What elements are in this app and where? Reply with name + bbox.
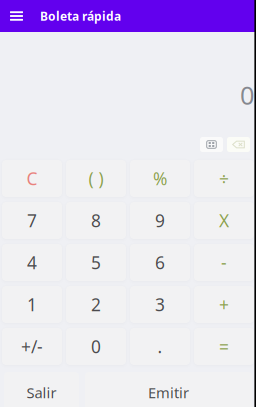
staticText: 1 bbox=[27, 293, 37, 316]
button[interactable]: 2 bbox=[66, 286, 126, 323]
button[interactable]: . bbox=[130, 328, 190, 365]
button[interactable]: Salir bbox=[4, 372, 79, 407]
staticText: 5 bbox=[91, 251, 101, 274]
staticText: + bbox=[219, 293, 229, 316]
staticText: % bbox=[153, 167, 167, 190]
button[interactable]: 8 bbox=[66, 202, 126, 239]
staticText: ( ) bbox=[88, 167, 103, 190]
staticText: Boleta rápida bbox=[40, 8, 121, 24]
button[interactable]: 1 bbox=[2, 286, 62, 323]
staticText: 0 bbox=[240, 78, 254, 112]
button[interactable]: 4 bbox=[2, 244, 62, 281]
button[interactable]: +/- bbox=[2, 328, 62, 365]
staticText: 6 bbox=[155, 251, 165, 274]
staticText: Emitir bbox=[148, 383, 189, 402]
staticText: 7 bbox=[27, 209, 37, 232]
staticText: - bbox=[221, 251, 227, 274]
staticText: Salir bbox=[26, 383, 56, 402]
button[interactable]: 9 bbox=[130, 202, 190, 239]
button[interactable]: - bbox=[194, 244, 254, 281]
staticText: X bbox=[219, 209, 229, 232]
button[interactable]: 3 bbox=[130, 286, 190, 323]
button[interactable]: 0 bbox=[66, 328, 126, 365]
staticText: 2 bbox=[91, 293, 101, 316]
staticText: 0 bbox=[91, 335, 101, 358]
button[interactable]: Emitir bbox=[85, 372, 252, 407]
staticText: = bbox=[219, 335, 229, 358]
button[interactable]: = bbox=[194, 328, 254, 365]
button[interactable]: 7 bbox=[2, 202, 62, 239]
button[interactable]: % bbox=[130, 160, 190, 197]
staticText: 9 bbox=[155, 209, 165, 232]
staticText: 4 bbox=[27, 251, 37, 274]
staticText: +/- bbox=[21, 335, 43, 358]
button[interactable]: ÷ bbox=[194, 160, 254, 197]
button[interactable]: ( ) bbox=[66, 160, 126, 197]
staticText: . bbox=[157, 335, 162, 358]
staticText: 3 bbox=[155, 293, 165, 316]
button[interactable]: Menu bbox=[0, 0, 33, 32]
button[interactable]: 6 bbox=[130, 244, 190, 281]
button[interactable]: 5 bbox=[66, 244, 126, 281]
button[interactable]: C bbox=[2, 160, 62, 197]
button[interactable]: + bbox=[194, 286, 254, 323]
staticText: C bbox=[26, 167, 37, 190]
staticText: ÷ bbox=[219, 167, 229, 190]
button[interactable]: X bbox=[194, 202, 254, 239]
staticText: 8 bbox=[91, 209, 101, 232]
button[interactable]: Delete bbox=[227, 137, 250, 152]
button[interactable]: Keypad bbox=[200, 137, 223, 152]
